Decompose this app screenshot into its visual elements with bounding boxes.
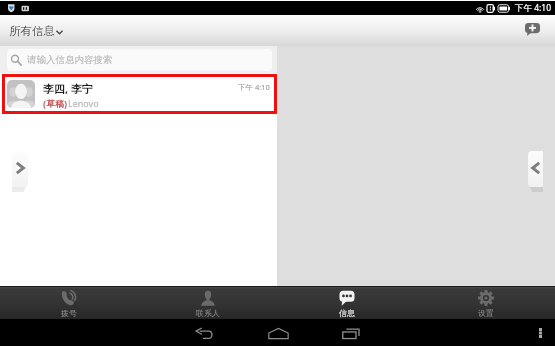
button[interactable]: Expand list panel — [12, 151, 28, 192]
button[interactable]: Back — [186, 319, 222, 346]
staticText: 联系人 — [196, 308, 220, 318]
staticText: 拨号 — [61, 308, 77, 318]
button[interactable]: Collapse detail panel — [528, 151, 543, 192]
staticText: 下午 4:10 — [238, 82, 270, 92]
staticText: 李四, 李宁 — [43, 81, 93, 96]
staticText: 信息 — [339, 308, 355, 318]
staticText: 请输入信息内容搜索 — [27, 54, 113, 66]
button[interactable]: 设置 — [416, 287, 555, 319]
staticText: 所有信息 — [9, 24, 55, 38]
button[interactable]: 所有信息 — [9, 15, 69, 46]
button[interactable]: 李四, 李宁 — [5, 77, 274, 111]
button[interactable]: 拨号 — [0, 287, 138, 319]
button[interactable]: More options — [530, 319, 550, 346]
button[interactable]: 联系人 — [138, 287, 277, 319]
staticText: Lenovo — [68, 97, 99, 109]
button[interactable]: Home — [260, 319, 296, 346]
staticText: 下午 4:10 — [515, 2, 552, 14]
button[interactable]: 请输入信息内容搜索 — [7, 49, 272, 71]
staticText: 设置 — [478, 308, 494, 318]
staticText: (草稿) — [43, 97, 68, 109]
button[interactable]: 信息 — [277, 287, 416, 319]
button[interactable]: Recent apps — [334, 319, 370, 346]
button[interactable]: New message — [521, 19, 543, 39]
